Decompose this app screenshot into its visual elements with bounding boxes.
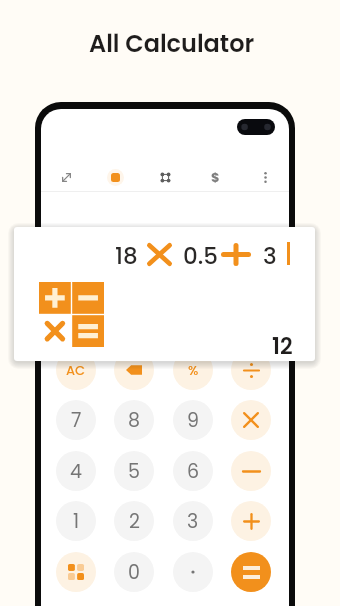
button[interactable]: 5 xyxy=(114,451,154,491)
staticText: 9 xyxy=(187,407,199,434)
button[interactable]: 8 xyxy=(114,400,154,440)
staticText: 1 xyxy=(73,508,80,535)
button[interactable]: Expand xyxy=(53,164,79,190)
staticText: AC xyxy=(66,361,86,379)
button[interactable]: 1 xyxy=(56,501,96,541)
button[interactable]: Unit converter xyxy=(152,164,178,190)
button[interactable]: Equals xyxy=(231,552,271,592)
button[interactable]: 9 xyxy=(173,400,213,440)
button[interactable]: Decimal point xyxy=(173,552,213,592)
button[interactable]: 6 xyxy=(173,451,213,491)
staticText: 6 xyxy=(187,458,200,485)
button[interactable]: 4 xyxy=(56,451,96,491)
button[interactable]: Apps xyxy=(56,552,96,592)
button[interactable]: 0 xyxy=(114,552,154,592)
staticText: 12 xyxy=(272,331,293,361)
staticText: $ xyxy=(211,168,220,186)
button[interactable]: More options xyxy=(252,164,278,190)
button[interactable]: Multiply xyxy=(231,400,271,440)
staticText: 0 xyxy=(128,559,140,586)
button[interactable]: Add xyxy=(231,501,271,541)
button[interactable]: Currency converter xyxy=(202,164,228,190)
staticText: 2 xyxy=(129,508,140,535)
button[interactable]: 7 xyxy=(56,400,96,440)
staticText: All Calculator xyxy=(89,27,255,61)
staticText: % xyxy=(188,361,199,379)
button[interactable]: Divide xyxy=(231,350,271,390)
button[interactable]: 3 xyxy=(173,501,213,541)
staticText: 5 xyxy=(128,458,140,485)
button[interactable]: Subtract xyxy=(231,451,271,491)
staticText: 8 xyxy=(128,407,140,434)
button[interactable]: Delete xyxy=(114,350,154,390)
staticText: 3 xyxy=(187,508,199,535)
staticText: 4 xyxy=(70,458,82,485)
button[interactable]: Calculator xyxy=(102,164,128,190)
button[interactable]: % xyxy=(173,350,213,390)
staticText: 0.5 xyxy=(183,240,218,272)
staticText: 7 xyxy=(71,407,82,434)
button[interactable]: 2 xyxy=(114,501,154,541)
staticText: 18 xyxy=(115,240,138,272)
button[interactable]: AC xyxy=(56,350,96,390)
staticText: 3 xyxy=(263,240,277,272)
